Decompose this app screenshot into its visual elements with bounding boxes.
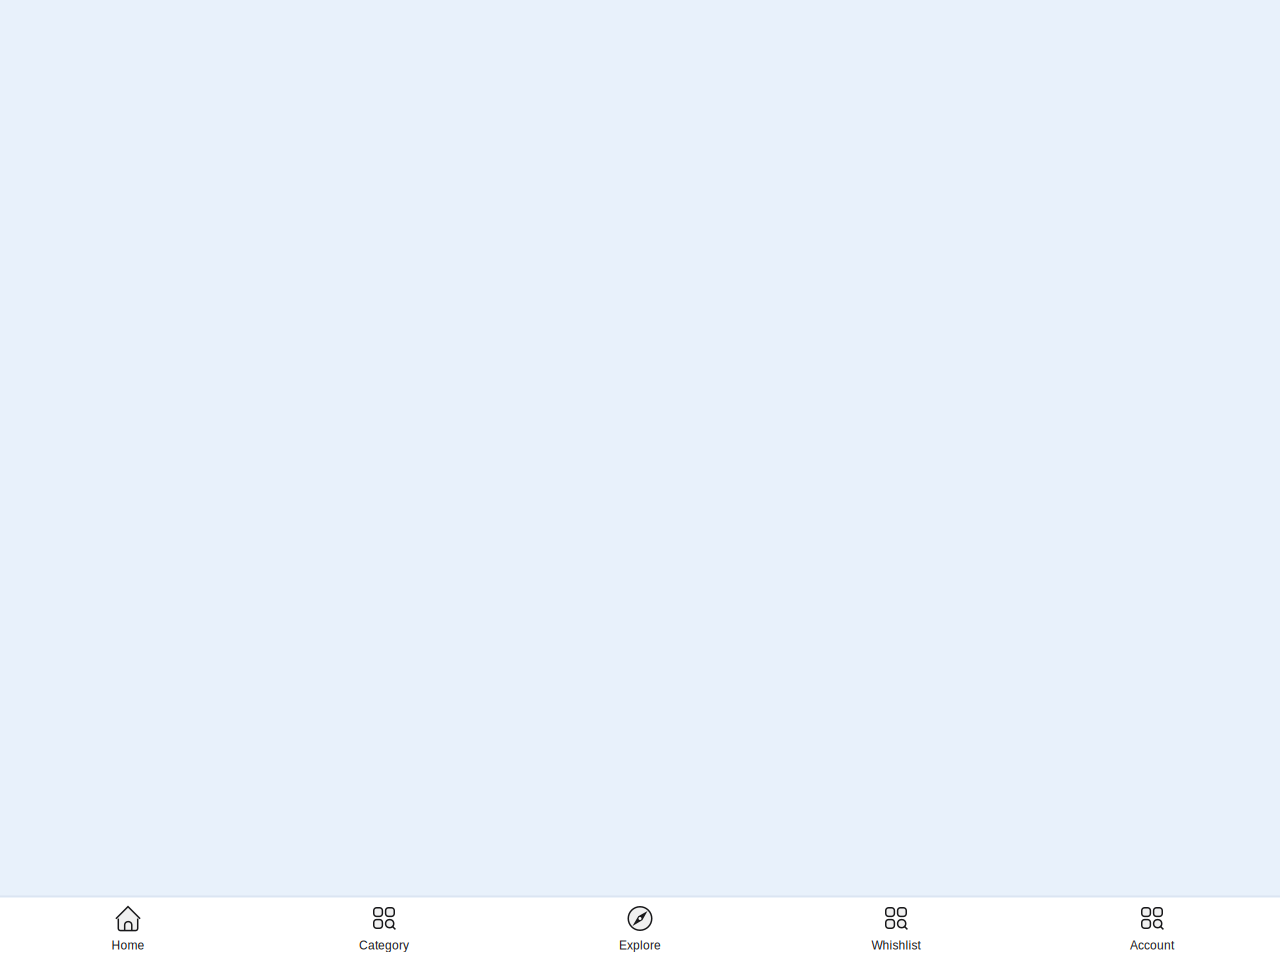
button[interactable]: Category	[256, 898, 512, 957]
staticText: Category	[359, 939, 409, 952]
staticText: Home	[111, 939, 144, 952]
staticText: Whishlist	[871, 939, 920, 952]
staticText: Explore	[619, 939, 661, 952]
button[interactable]: Explore	[512, 898, 768, 957]
button[interactable]: Home	[0, 898, 256, 957]
button[interactable]: Whishlist	[768, 898, 1024, 957]
staticText: Account	[1130, 939, 1174, 952]
button[interactable]: Account	[1024, 898, 1280, 957]
